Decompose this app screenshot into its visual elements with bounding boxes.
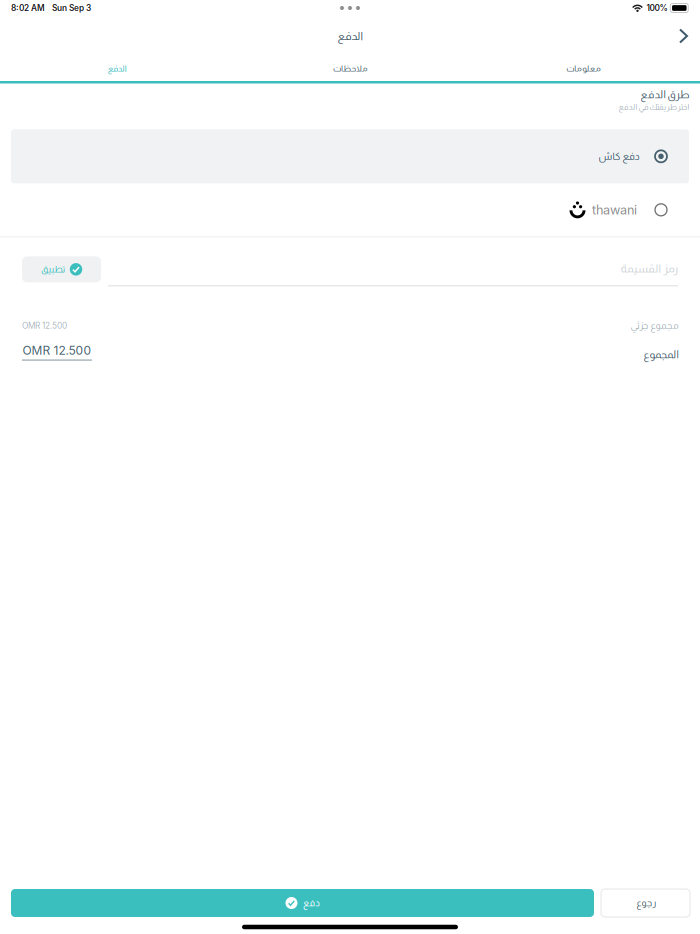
button[interactable]: معلومات	[467, 56, 700, 81]
staticText: مجموع جزئي	[630, 320, 678, 331]
staticText: المجموع	[643, 349, 678, 361]
staticText: ملاحظات	[332, 64, 367, 73]
button[interactable]: دفع	[11, 889, 594, 917]
button[interactable]: Next	[668, 19, 699, 52]
staticText: رجوع	[636, 898, 655, 908]
staticText: thawani	[592, 202, 637, 217]
staticText: اختر طريقتك في الدفع	[618, 102, 689, 111]
staticText: Sun Sep 3	[52, 3, 91, 13]
staticText: دفع كاش	[598, 151, 639, 162]
button[interactable]: thawani	[11, 183, 689, 236]
button[interactable]: ملاحظات	[233, 56, 467, 81]
button[interactable]: الدفع	[0, 56, 233, 81]
staticText: الدفع	[337, 30, 363, 42]
staticText: معلومات	[566, 64, 601, 73]
staticText: الدفع	[107, 64, 126, 73]
staticText: طرق الدفع	[640, 88, 689, 100]
staticText: 100%	[646, 3, 667, 13]
staticText: 8:02 AM	[11, 3, 45, 13]
staticText: OMR 12.500	[22, 343, 91, 357]
button[interactable]: دفع كاش	[11, 129, 689, 183]
staticText: رمز القسيمة	[620, 262, 678, 275]
button[interactable]: رجوع	[601, 889, 690, 917]
staticText: OMR 12.500	[22, 321, 67, 331]
staticText: دفع	[302, 898, 319, 908]
staticText: تطبيق	[40, 264, 64, 274]
button[interactable]: تطبيق	[22, 256, 101, 282]
